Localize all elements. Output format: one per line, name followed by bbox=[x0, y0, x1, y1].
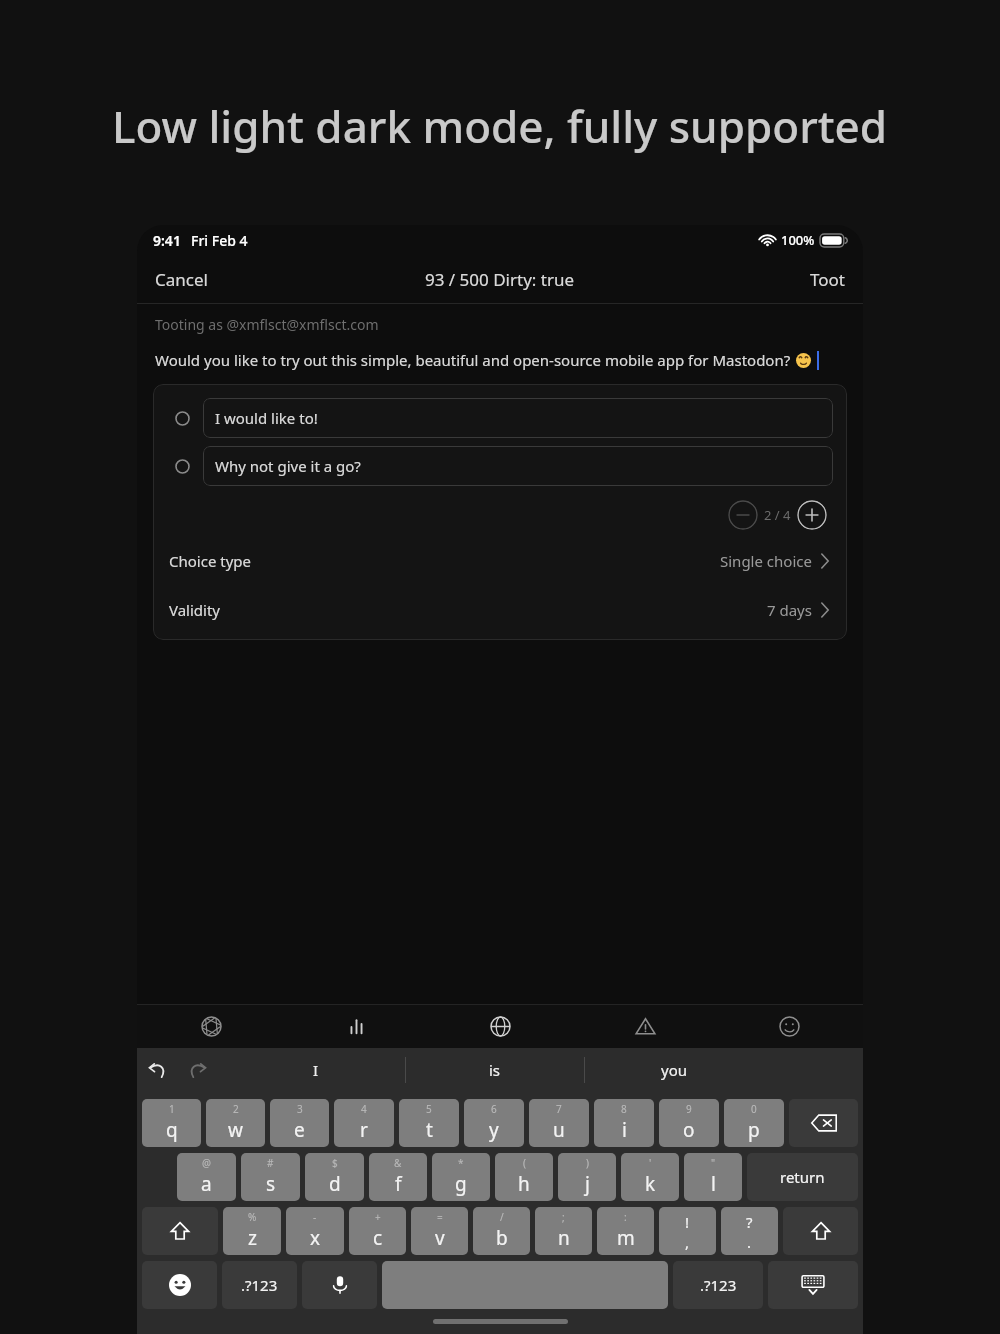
button[interactable]: # bbox=[241, 1153, 300, 1201]
button[interactable]: ! bbox=[659, 1207, 716, 1255]
button[interactable]: / bbox=[473, 1207, 530, 1255]
staticText: 4 bbox=[361, 1102, 367, 1116]
staticText: , bbox=[685, 1232, 690, 1252]
button[interactable]: = bbox=[411, 1207, 468, 1255]
staticText: p bbox=[748, 1117, 760, 1143]
staticText: r bbox=[360, 1117, 368, 1143]
staticText: Why not give it a go? bbox=[215, 456, 361, 476]
staticText: b bbox=[496, 1225, 508, 1251]
staticText: 0 bbox=[751, 1102, 757, 1116]
staticText: Fri Feb 4 bbox=[191, 231, 248, 250]
staticText: l bbox=[711, 1171, 716, 1197]
button[interactable]: Shift bbox=[142, 1207, 218, 1255]
staticText: v bbox=[435, 1225, 445, 1251]
button[interactable]: Why not give it a go? bbox=[203, 446, 833, 486]
button[interactable]: 3 bbox=[270, 1099, 329, 1147]
button[interactable]: .?123 bbox=[222, 1261, 297, 1309]
staticText: k bbox=[645, 1171, 656, 1197]
button[interactable]: return bbox=[747, 1153, 858, 1201]
staticText: s bbox=[266, 1171, 276, 1197]
button[interactable]: + bbox=[349, 1207, 406, 1255]
staticText: m bbox=[617, 1225, 635, 1251]
button[interactable]: Undo bbox=[137, 1050, 177, 1090]
button[interactable]: & bbox=[369, 1153, 427, 1201]
button[interactable]: Hide keyboard bbox=[768, 1261, 858, 1309]
staticText: return bbox=[780, 1167, 825, 1187]
button[interactable]: 9 bbox=[659, 1099, 719, 1147]
button[interactable]: 0 bbox=[724, 1099, 784, 1147]
staticText: f bbox=[395, 1171, 402, 1197]
button[interactable]: Attach media bbox=[191, 1006, 231, 1046]
button[interactable]: : bbox=[597, 1207, 654, 1255]
button[interactable]: Add option bbox=[797, 500, 827, 530]
button[interactable]: ) bbox=[558, 1153, 616, 1201]
staticText: 3 bbox=[297, 1102, 303, 1116]
button[interactable]: Select option bbox=[167, 403, 197, 433]
staticText: ' bbox=[649, 1156, 652, 1170]
button[interactable]: Emoji bbox=[142, 1261, 217, 1309]
button[interactable]: 6 bbox=[464, 1099, 524, 1147]
button[interactable]: 2 bbox=[206, 1099, 265, 1147]
button[interactable]: Add poll bbox=[336, 1006, 376, 1046]
staticText: / bbox=[500, 1210, 504, 1224]
staticText: ? bbox=[746, 1212, 753, 1232]
staticText: x bbox=[310, 1225, 321, 1251]
button[interactable]: Redo bbox=[177, 1050, 217, 1090]
button[interactable]: .?123 bbox=[673, 1261, 763, 1309]
button[interactable]: Cancel bbox=[137, 255, 226, 303]
staticText: $ bbox=[332, 1156, 338, 1170]
staticText: ) bbox=[586, 1156, 589, 1170]
staticText: n bbox=[558, 1225, 570, 1251]
staticText: Cancel bbox=[155, 268, 208, 291]
button[interactable]: $ bbox=[305, 1153, 364, 1201]
button[interactable]: Shift bbox=[783, 1207, 858, 1255]
staticText: 1 bbox=[169, 1102, 175, 1116]
button[interactable]: you bbox=[585, 1048, 763, 1092]
button[interactable]: % bbox=[223, 1207, 281, 1255]
staticText: c bbox=[373, 1225, 383, 1251]
button[interactable]: Remove option bbox=[728, 500, 758, 530]
staticText: z bbox=[248, 1225, 257, 1251]
button[interactable]: Select option bbox=[167, 451, 197, 481]
button[interactable]: " bbox=[684, 1153, 742, 1201]
button[interactable]: @ bbox=[177, 1153, 236, 1201]
button[interactable]: I would like to! bbox=[203, 398, 833, 438]
button[interactable]: * bbox=[432, 1153, 490, 1201]
staticText: h bbox=[518, 1171, 530, 1197]
button[interactable]: 8 bbox=[594, 1099, 654, 1147]
staticText: & bbox=[394, 1156, 402, 1170]
staticText: j bbox=[585, 1171, 590, 1197]
button[interactable]: Content warning bbox=[625, 1006, 665, 1046]
staticText: # bbox=[267, 1156, 274, 1170]
button[interactable]: Validity bbox=[153, 585, 847, 634]
staticText: % bbox=[248, 1210, 257, 1224]
staticText: - bbox=[313, 1210, 317, 1224]
staticText: u bbox=[553, 1117, 565, 1143]
button[interactable]: Toot bbox=[792, 255, 863, 303]
button[interactable]: ? bbox=[721, 1207, 778, 1255]
staticText: Low light dark mode, fully supported bbox=[112, 96, 888, 156]
button[interactable]: is bbox=[406, 1048, 584, 1092]
button[interactable]: Backspace bbox=[789, 1099, 858, 1147]
staticText: = bbox=[437, 1210, 443, 1224]
button[interactable]: 5 bbox=[399, 1099, 459, 1147]
button[interactable]: 1 bbox=[142, 1099, 201, 1147]
button[interactable]: Visibility bbox=[480, 1006, 520, 1046]
button[interactable]: 4 bbox=[334, 1099, 394, 1147]
button[interactable]: ( bbox=[495, 1153, 553, 1201]
button[interactable]: I bbox=[227, 1048, 405, 1092]
button[interactable]: - bbox=[286, 1207, 344, 1255]
staticText: Choice type bbox=[169, 551, 252, 571]
button[interactable]: Voice input bbox=[302, 1261, 377, 1309]
button[interactable]: ' bbox=[621, 1153, 679, 1201]
staticText: o bbox=[683, 1117, 695, 1143]
button[interactable]: Choice type bbox=[153, 536, 847, 585]
staticText: Would you like to try out this simple, b… bbox=[155, 350, 791, 370]
staticText: e bbox=[294, 1117, 305, 1143]
staticText: .?123 bbox=[241, 1275, 278, 1295]
staticText: 100% bbox=[781, 231, 815, 249]
button[interactable]: ; bbox=[535, 1207, 592, 1255]
button[interactable]: 7 bbox=[529, 1099, 589, 1147]
button[interactable]: Emoji bbox=[769, 1006, 809, 1046]
